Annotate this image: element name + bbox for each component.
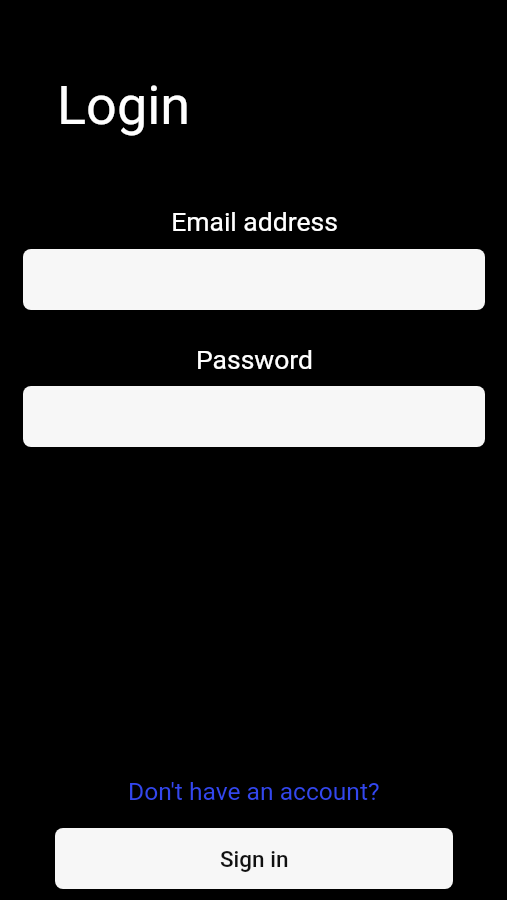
staticText: Sign in	[220, 846, 289, 872]
staticText: Email address	[1, 206, 507, 237]
button[interactable]: Don't have an account?	[126, 777, 382, 806]
staticText: Login	[57, 74, 191, 137]
button[interactable]: Sign in	[55, 828, 453, 889]
button[interactable]: Email address input	[23, 249, 485, 310]
button[interactable]: Password input	[23, 386, 485, 447]
staticText: Password	[1, 344, 507, 375]
